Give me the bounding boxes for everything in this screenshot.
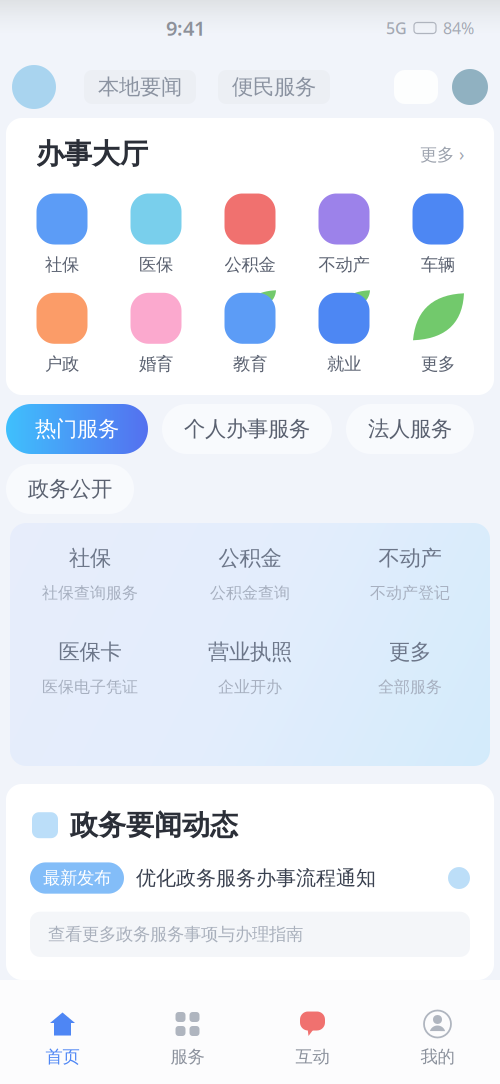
staticText: 不动产 <box>378 545 441 571</box>
staticText: 查看更多政务服务事项与办理指南 <box>48 924 303 945</box>
staticText: 84% <box>443 17 474 39</box>
staticText: 社保 <box>69 545 111 571</box>
button[interactable]: 社保 <box>15 190 109 275</box>
button[interactable]: 服务 <box>125 980 250 1084</box>
staticText: 公积金查询 <box>210 583 290 603</box>
button[interactable]: 医保卡 <box>10 639 170 697</box>
button[interactable]: 首页 <box>0 980 125 1084</box>
button[interactable]: 医保 <box>109 190 203 275</box>
staticText: 本地要闻 <box>98 74 182 100</box>
staticText: 服务 <box>170 1046 204 1067</box>
staticText: 9:41 <box>166 15 205 41</box>
button[interactable]: 个人办事服务 <box>162 404 332 454</box>
staticText: 法人服务 <box>368 416 452 442</box>
staticText: 首页 <box>45 1046 79 1067</box>
button[interactable]: 更多 <box>391 289 485 375</box>
staticText: 不动产登记 <box>370 583 450 603</box>
staticText: 不动产 <box>318 254 369 275</box>
staticText: 热门服务 <box>35 416 119 442</box>
staticText: 更多 › <box>420 142 464 165</box>
staticText: 优化政务服务办事流程通知 <box>136 866 376 890</box>
staticText: 社保 <box>45 254 79 275</box>
button[interactable]: 最新发布 <box>6 862 494 894</box>
staticText: 5G <box>386 17 407 39</box>
staticText: 公积金 <box>224 254 275 275</box>
staticText: 便民服务 <box>232 74 316 100</box>
button[interactable]: 就业 <box>297 289 391 375</box>
staticText: 就业 <box>327 353 361 375</box>
staticText: 个人办事服务 <box>184 416 310 442</box>
staticText: 更多 <box>389 639 431 665</box>
staticText: 户政 <box>45 353 79 375</box>
button[interactable]: 车辆 <box>391 190 485 275</box>
staticText: 医保 <box>139 254 173 275</box>
staticText: 政务要闻动态 <box>70 808 238 842</box>
staticText: 政务公开 <box>28 476 112 502</box>
button[interactable]: 本地要闻 <box>84 70 196 104</box>
staticText: 社保查询服务 <box>42 583 138 603</box>
button[interactable]: 互动 <box>250 980 375 1084</box>
button[interactable]: 婚育 <box>109 289 203 375</box>
staticText: 医保卡 <box>58 639 121 665</box>
staticText: 更多 <box>421 353 455 375</box>
button[interactable]: Account <box>452 69 488 105</box>
button[interactable]: 教育 <box>203 289 297 375</box>
button[interactable]: 更多 <box>330 639 490 697</box>
staticText: 医保电子凭证 <box>42 677 138 697</box>
button[interactable]: 公积金 <box>203 190 297 275</box>
button[interactable]: 营业执照 <box>170 639 330 697</box>
button[interactable]: 政务公开 <box>6 464 134 514</box>
button[interactable]: 社保 <box>10 545 170 603</box>
staticText: 办事大厅 <box>36 137 148 171</box>
staticText: 公积金 <box>218 545 281 571</box>
button[interactable]: 不动产 <box>297 190 391 275</box>
button[interactable]: 户政 <box>15 289 109 375</box>
button[interactable]: 热门服务 <box>6 404 148 454</box>
button[interactable]: 不动产 <box>330 545 490 603</box>
button[interactable]: 公积金 <box>170 545 330 603</box>
staticText: 我的 <box>420 1046 454 1067</box>
staticText: 企业开办 <box>218 677 282 697</box>
staticText: 教育 <box>233 353 267 375</box>
button[interactable]: 更多 › <box>420 142 464 165</box>
button[interactable]: City portal <box>12 65 56 109</box>
staticText: 最新发布 <box>43 867 111 889</box>
staticText: 全部服务 <box>378 677 442 697</box>
button[interactable]: 法人服务 <box>346 404 474 454</box>
staticText: 互动 <box>295 1046 329 1067</box>
button[interactable]: 我的 <box>375 980 500 1084</box>
button[interactable]: 便民服务 <box>218 70 330 104</box>
button[interactable]: 查看更多政务服务事项与办理指南 <box>6 912 494 957</box>
staticText: 车辆 <box>421 254 455 275</box>
staticText: 婚育 <box>139 353 173 375</box>
staticText: 营业执照 <box>208 639 292 665</box>
